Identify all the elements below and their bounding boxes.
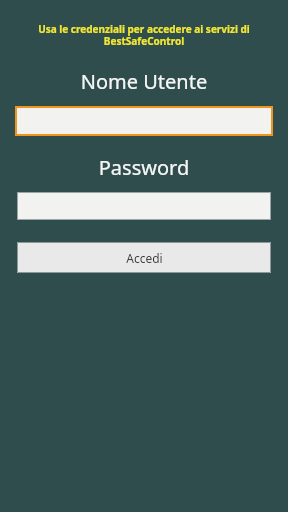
button[interactable]: Password xyxy=(17,192,271,220)
staticText: Accedi xyxy=(126,250,163,266)
staticText: Usa le credenziali per accedere ai servi… xyxy=(26,22,262,48)
staticText: Nome Utente xyxy=(0,68,288,95)
button[interactable]: Accedi xyxy=(17,242,271,273)
staticText: Password xyxy=(0,154,288,181)
